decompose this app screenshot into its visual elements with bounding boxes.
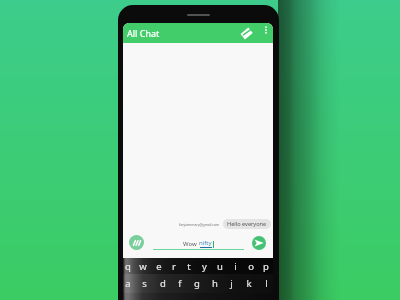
button[interactable]: y (197, 258, 212, 274)
button[interactable]: p (258, 258, 273, 274)
button[interactable]: l (259, 274, 273, 293)
button[interactable]: i (228, 258, 243, 274)
button[interactable]: Hello everyone (223, 219, 271, 229)
button[interactable]: g (189, 274, 204, 293)
staticText: a (125, 277, 131, 290)
button[interactable]: Profile (129, 235, 144, 250)
staticText: j (230, 277, 233, 290)
button[interactable]: h (207, 274, 222, 293)
button[interactable]: More options (260, 24, 272, 36)
button[interactable]: t (181, 258, 196, 274)
staticText: y (202, 260, 207, 273)
button[interactable]: d (155, 274, 170, 293)
staticText: o (248, 260, 254, 273)
staticText: d (160, 277, 166, 290)
button[interactable]: All Chat (123, 23, 273, 43)
staticText: t (187, 260, 191, 273)
button[interactable]: a (123, 274, 135, 293)
staticText: r (172, 260, 176, 273)
button[interactable]: o (243, 258, 258, 274)
staticText: l (265, 277, 268, 290)
button[interactable]: r (166, 258, 181, 274)
staticText: Hello everyone (227, 220, 267, 228)
button[interactable]: s (137, 274, 152, 293)
button[interactable]: j (224, 274, 239, 293)
button[interactable]: w (135, 258, 150, 274)
staticText: f (178, 277, 182, 290)
button[interactable]: f (172, 274, 187, 293)
staticText: p (263, 260, 269, 273)
staticText: foryiammary@gmail.com (179, 222, 220, 227)
button[interactable]: q (123, 258, 135, 274)
staticText: q (125, 260, 131, 273)
button[interactable]: u (212, 258, 227, 274)
button[interactable]: Send (252, 236, 266, 250)
staticText: Wow (183, 240, 199, 248)
staticText: s (142, 277, 147, 290)
staticText: k (246, 277, 252, 290)
staticText: All Chat (127, 27, 160, 39)
button[interactable]: Notebook (238, 25, 255, 42)
staticText: g (194, 277, 200, 290)
button[interactable]: e (151, 258, 166, 274)
button[interactable]: k (241, 274, 256, 293)
staticText: i (234, 260, 237, 273)
staticText: h (212, 277, 218, 290)
staticText: u (217, 260, 223, 273)
staticText: nifty (199, 239, 212, 247)
button[interactable]: Wow (153, 237, 244, 250)
staticText: e (156, 260, 162, 273)
staticText: w (139, 260, 147, 273)
